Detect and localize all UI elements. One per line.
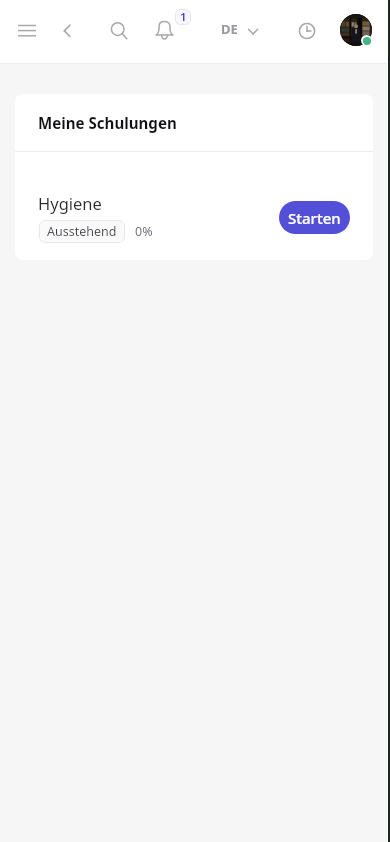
staticText: 0% — [135, 223, 153, 240]
staticText: 1 — [180, 9, 187, 25]
staticText: Starten — [288, 208, 341, 228]
staticText: Meine Schulungen — [38, 113, 177, 134]
button[interactable]: Menu — [9, 13, 45, 49]
button[interactable]: DE — [221, 12, 259, 45]
button[interactable]: Back — [52, 13, 88, 49]
staticText: Ausstehend — [47, 223, 117, 240]
button[interactable]: Notifications — [150, 6, 194, 46]
button[interactable]: Profile — [340, 14, 372, 46]
staticText: Hygiene — [38, 192, 102, 214]
button[interactable]: History — [289, 13, 325, 49]
staticText: DE — [221, 20, 238, 38]
button[interactable]: Starten — [279, 201, 350, 234]
button[interactable]: Search — [100, 12, 136, 48]
